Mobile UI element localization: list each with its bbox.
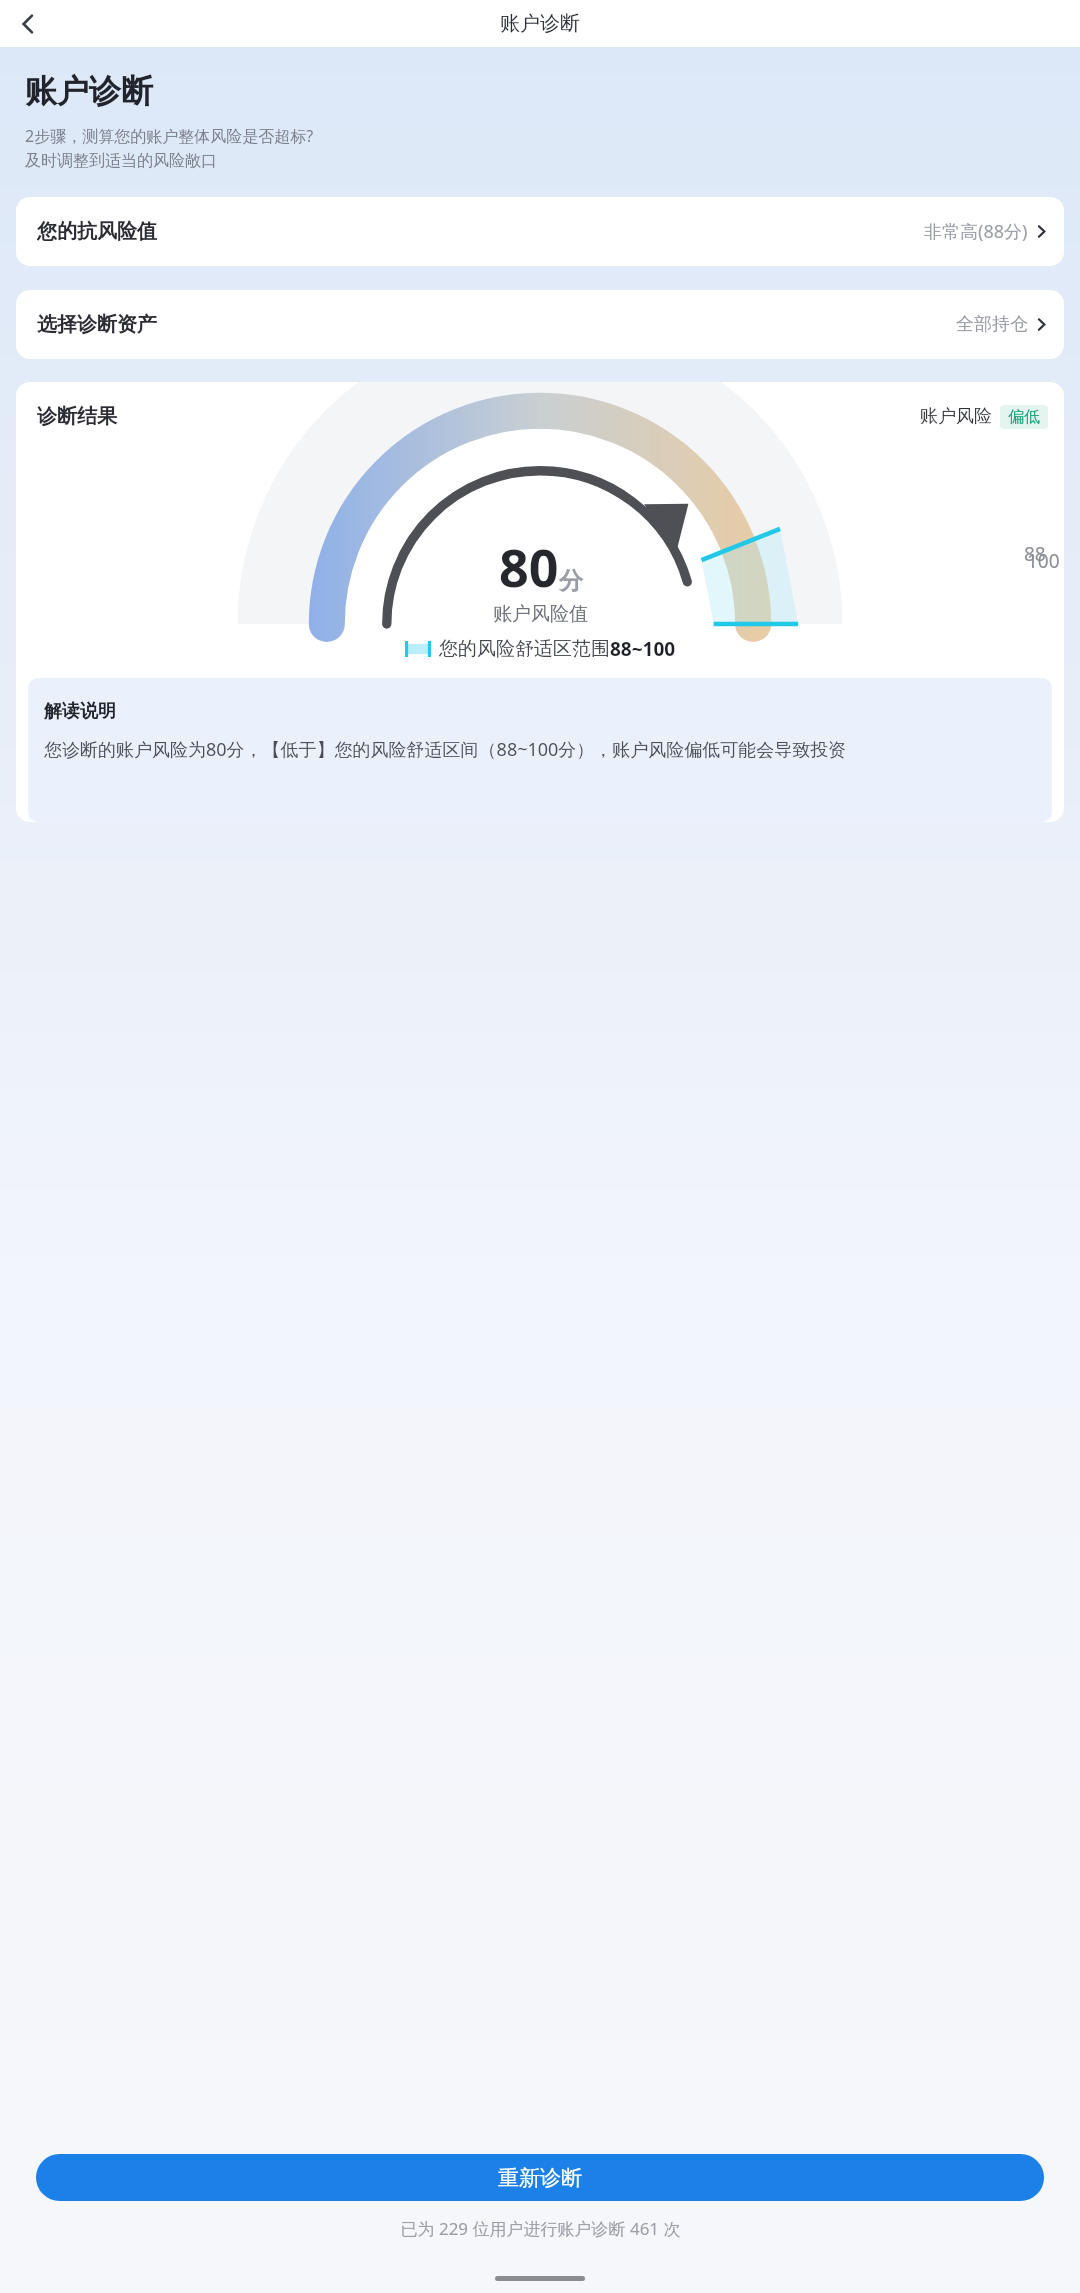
staticText: 账户诊断 — [500, 11, 580, 36]
staticText: 您的抗风险值 — [37, 219, 157, 244]
staticText: 账户诊断 — [25, 71, 153, 111]
staticText: 账户风险 — [920, 405, 992, 428]
staticText: 解读说明 — [44, 700, 116, 723]
staticText: 100 — [1027, 548, 1060, 574]
button[interactable]: 您的抗风险值 — [16, 197, 1064, 266]
staticText: 已为 229 位用户进行账户诊断 461 次 — [400, 2217, 681, 2240]
staticText: 您的风险舒适区范围 — [439, 637, 610, 661]
staticText: 88~100 — [610, 636, 676, 662]
staticText: 80 — [499, 531, 559, 602]
staticText: 重新诊断 — [498, 2165, 582, 2191]
staticText: 2步骤，测算您的账户整体风险是否超标? — [25, 125, 314, 147]
staticText: 分 — [559, 566, 583, 596]
staticText: 账户风险值 — [493, 602, 588, 626]
staticText: 88 — [1024, 541, 1046, 567]
staticText: 诊断结果 — [37, 404, 117, 429]
staticText: 您诊断的账户风险为80分，【低于】您的风险舒适区间（88~100分），账户风险偏… — [44, 737, 847, 762]
button[interactable]: Back — [6, 2, 50, 46]
staticText: 偏低 — [1008, 407, 1040, 427]
staticText: 非常高(88分) — [924, 219, 1028, 244]
staticText: 及时调整到适当的风险敞口 — [25, 151, 217, 171]
button[interactable]: 选择诊断资产 — [16, 290, 1064, 359]
button[interactable]: 重新诊断 — [36, 2154, 1044, 2201]
staticText: 选择诊断资产 — [37, 312, 157, 337]
staticText: 全部持仓 — [956, 313, 1028, 336]
